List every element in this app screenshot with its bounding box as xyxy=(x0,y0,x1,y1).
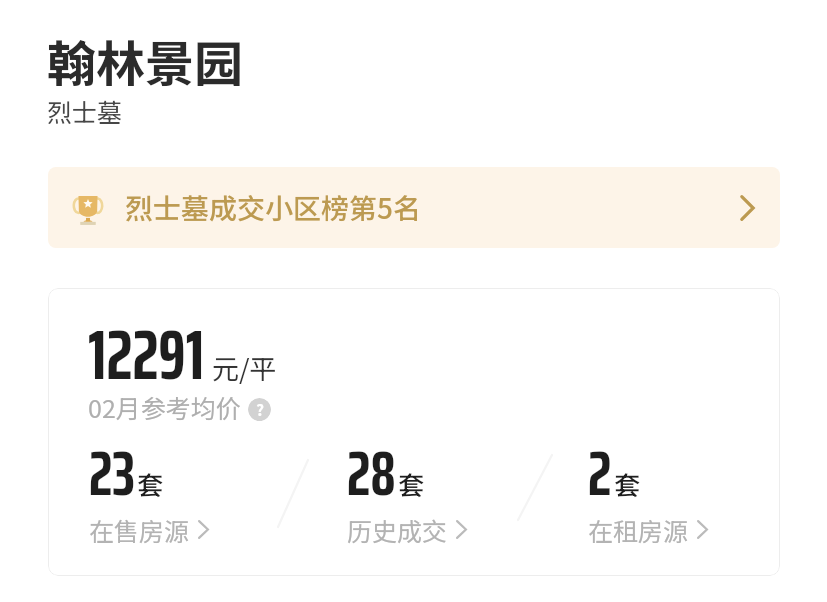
staticText: 2 xyxy=(588,425,612,523)
staticText: 套 xyxy=(398,465,425,503)
staticText: 23 xyxy=(89,425,135,523)
staticText: 烈士墓成交小区榜第5名 xyxy=(125,187,421,228)
button[interactable]: 2 xyxy=(584,444,780,554)
button[interactable]: 23 xyxy=(85,444,293,554)
button[interactable]: Trophy ranking xyxy=(48,167,780,248)
staticText: 套 xyxy=(137,465,164,503)
staticText: 02月参考均价 xyxy=(88,389,241,425)
other: Trophy ranking xyxy=(70,190,106,226)
staticText: ? xyxy=(256,399,264,421)
button[interactable]: 28 xyxy=(343,444,551,554)
staticText: 12291 xyxy=(88,301,205,410)
staticText: 28 xyxy=(347,425,396,523)
staticText: 在售房源 xyxy=(89,512,190,548)
staticText: 元/平 xyxy=(212,348,277,387)
button[interactable]: 关于参考均价 xyxy=(248,398,271,421)
staticText: 套 xyxy=(614,465,641,503)
staticText: 翰林景园 xyxy=(47,25,244,96)
staticText: 在租房源 xyxy=(588,512,689,548)
staticText: 烈士墓 xyxy=(47,93,123,129)
staticText: 历史成交 xyxy=(347,512,448,548)
